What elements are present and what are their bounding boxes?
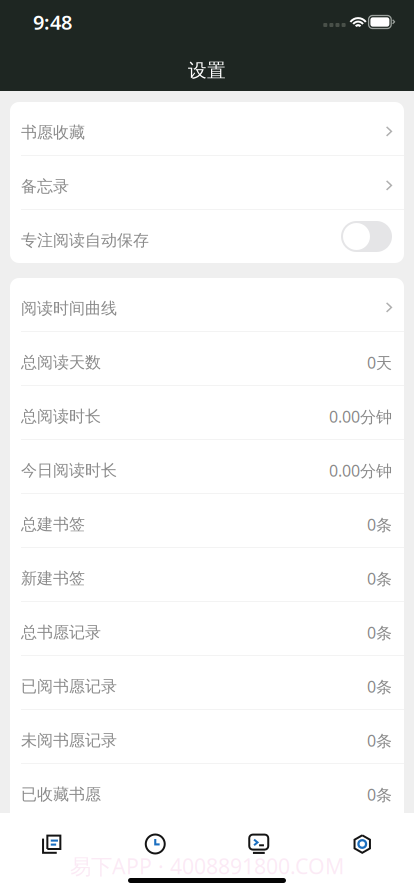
- button[interactable]: 书架: [0, 813, 103, 875]
- staticText: 已收藏书愿: [21, 785, 101, 804]
- staticText: 0条: [367, 838, 392, 859]
- staticText: 0.00分钟: [329, 406, 392, 427]
- staticText: 书愿收藏: [21, 123, 85, 142]
- staticText: 总阅读时长: [21, 407, 101, 426]
- staticText: 0条: [367, 730, 392, 751]
- staticText: 阅读时间曲线: [21, 299, 117, 318]
- staticText: 新建书签: [21, 569, 85, 588]
- staticText: 总书愿记录: [21, 623, 101, 642]
- staticText: 9:48: [33, 9, 72, 35]
- button[interactable]: 备忘录: [10, 156, 404, 209]
- staticText: 0条: [367, 622, 392, 643]
- staticText: 专注阅读自动保存: [21, 231, 149, 250]
- staticText: 今日阅读时长: [21, 461, 117, 480]
- staticText: 0条: [367, 784, 392, 805]
- staticText: 0条: [367, 514, 392, 535]
- button[interactable]: 控制台: [207, 813, 310, 875]
- button[interactable]: 设置: [310, 813, 414, 875]
- staticText: 未阅书愿记录: [21, 731, 117, 750]
- staticText: 0.00分钟: [329, 460, 392, 481]
- staticText: 0条: [367, 568, 392, 589]
- button[interactable]: 阅读时间曲线: [10, 278, 404, 331]
- staticText: 总建书签: [21, 515, 85, 534]
- staticText: 0天: [367, 352, 392, 373]
- staticText: 总阅读天数: [21, 353, 101, 372]
- staticText: 0条: [367, 676, 392, 697]
- staticText: 已阅书愿记录: [21, 677, 117, 696]
- button[interactable]: 书愿收藏: [10, 102, 404, 155]
- staticText: 设置: [188, 59, 226, 82]
- staticText: 备忘录: [21, 177, 69, 196]
- button[interactable]: 阅读时间: [103, 813, 207, 875]
- button[interactable]: 专注阅读自动保存: [10, 210, 404, 263]
- staticText: 易下APP · 4008891800.COM: [70, 852, 344, 880]
- staticText: 未收藏书愿: [21, 839, 101, 858]
